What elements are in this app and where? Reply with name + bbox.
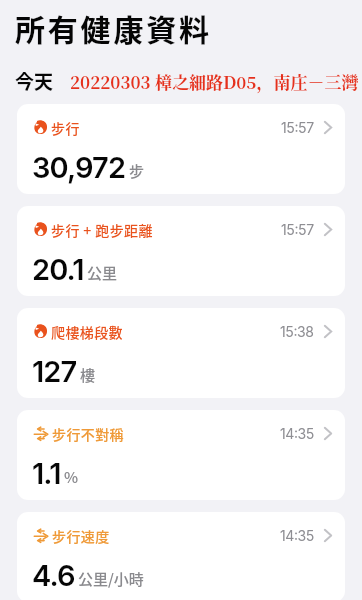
staticText: 15:57 [281,119,314,136]
staticText: 步 [129,160,145,182]
staticText: 20220303 樟之細路D05，南庄－三灣 [70,69,359,93]
staticText: 步行不對稱 [52,424,124,442]
button[interactable]: 步行不對稱 [17,410,345,500]
staticText: 步行 [51,118,80,136]
staticText: 20.1 [32,252,84,287]
staticText: 15:38 [280,323,314,340]
staticText: 步行速度 [52,526,110,544]
staticText: 爬樓梯段數 [51,322,123,340]
staticText: 15:57 [281,221,314,238]
button[interactable]: 步行 + 跑步距離 [17,206,345,296]
staticText: 14:35 [280,527,314,544]
staticText: 樓 [80,364,96,386]
staticText: 公里/小時 [78,568,144,590]
staticText: 127 [32,354,77,389]
staticText: 所有健康資料 [15,6,212,49]
staticText: 30,972 [32,150,126,185]
staticText: 14:35 [280,425,314,442]
button[interactable]: 步行速度 [17,512,345,600]
staticText: 步行 + 跑步距離 [51,220,153,238]
staticText: 1.1 [32,456,61,491]
staticText: 今天 [15,67,54,95]
button[interactable]: 步行 [17,104,345,194]
staticText: 公里 [87,262,118,284]
staticText: 4.6 [32,558,75,593]
button[interactable]: 爬樓梯段數 [17,308,345,398]
staticText: % [64,466,79,488]
